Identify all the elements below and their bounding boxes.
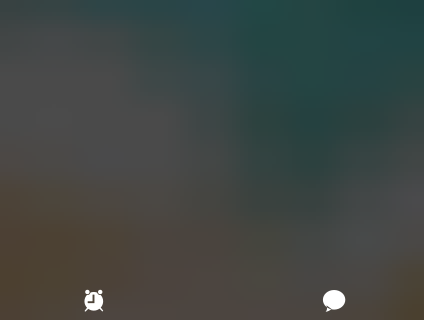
button[interactable]: Alarm — [66, 273, 122, 320]
button[interactable]: Messages — [306, 272, 362, 320]
